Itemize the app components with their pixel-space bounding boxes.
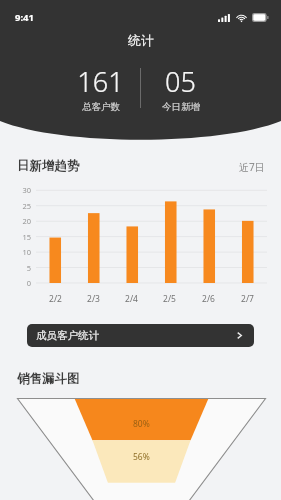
staticText: 销售漏斗图 (17, 371, 80, 387)
staticText: 80% (133, 418, 150, 430)
staticText: 15 (14, 232, 31, 242)
staticText: 2/5 (163, 293, 176, 305)
button[interactable]: 成员客户统计 (27, 324, 254, 347)
staticText: 10 (14, 247, 31, 257)
staticText: 161 (77, 63, 124, 100)
staticText: 56% (133, 451, 150, 463)
staticText: 总客户数 (82, 101, 120, 113)
staticText: 25 (14, 201, 31, 211)
staticText: 9:41 (15, 11, 34, 24)
other: More (235, 331, 244, 340)
staticText: 05 (165, 63, 196, 100)
staticText: 5 (14, 263, 31, 273)
staticText: 20 (14, 216, 31, 226)
staticText: 统计 (128, 32, 154, 48)
staticText: 2/7 (241, 293, 254, 305)
staticText: 成员客户统计 (36, 329, 99, 342)
staticText: 0 (14, 278, 31, 288)
staticText: 日新增趋势 (17, 158, 80, 174)
staticText: 2/3 (87, 293, 100, 305)
staticText: 2/6 (202, 293, 215, 305)
staticText: 2/4 (125, 293, 138, 305)
staticText: 近7日 (239, 160, 265, 174)
staticText: 2/2 (49, 293, 62, 305)
staticText: 今日新增 (162, 101, 200, 113)
staticText: 30 (14, 185, 31, 195)
